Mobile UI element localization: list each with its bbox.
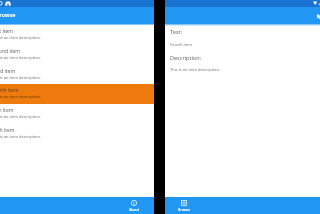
button[interactable]: Fifth item [0, 104, 154, 124]
staticText: Text: [170, 28, 183, 35]
button[interactable]: Fourth item [0, 84, 154, 104]
staticText: Description: [170, 54, 202, 61]
staticText: This is an item description. [0, 94, 42, 99]
staticText: Second item [0, 48, 21, 55]
button[interactable]: About [127, 197, 141, 212]
staticText: Browse [0, 11, 16, 18]
staticText: First item [0, 28, 14, 35]
staticText: This is an item description. [0, 134, 42, 139]
button[interactable]: First item [0, 25, 154, 45]
button[interactable]: Sixth item [0, 124, 154, 144]
staticText: Sixth item [0, 127, 15, 134]
staticText: Third item [0, 68, 16, 75]
staticText: Fourth item [0, 87, 19, 94]
staticText: This is an item description. [0, 55, 42, 60]
button[interactable]: Second item [0, 45, 154, 65]
staticText: Fourth item [170, 42, 193, 47]
staticText: This is an item description. [0, 114, 42, 119]
button[interactable]: Browse [177, 197, 191, 212]
staticText: This is an item description. [0, 35, 42, 40]
staticText: Browse [178, 207, 191, 212]
staticText: Fifth item [0, 107, 14, 114]
button[interactable]: Third item [0, 65, 154, 85]
staticText: This is an item description. [170, 67, 221, 72]
staticText: This is an item description. [0, 75, 42, 80]
staticText: About [129, 207, 139, 212]
